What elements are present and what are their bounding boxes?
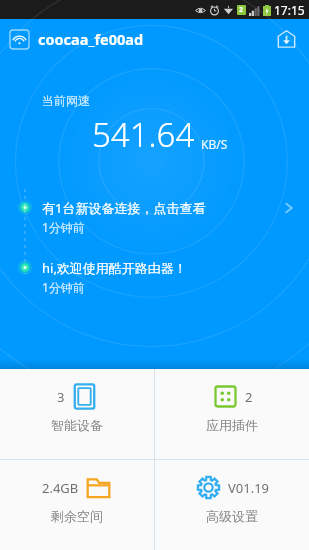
button[interactable]: Plugins bbox=[155, 369, 309, 433]
staticText: 当前网速 bbox=[42, 93, 90, 108]
button[interactable]: Free space bbox=[0, 460, 154, 524]
staticText: 有1台新设备连接，点击查看 bbox=[42, 199, 206, 217]
staticText: 高级设置 bbox=[206, 508, 258, 524]
staticText: 智能设备 bbox=[51, 417, 103, 433]
staticText: KB/S bbox=[201, 136, 228, 152]
staticText: 1分钟前 bbox=[42, 219, 85, 235]
staticText: hi,欢迎使用酷开路由器！ bbox=[42, 259, 187, 277]
button[interactable]: hi,欢迎使用酷开路由器！ bbox=[0, 259, 309, 295]
staticText: V01.19 bbox=[228, 479, 270, 497]
button[interactable]: Download bbox=[273, 26, 299, 52]
staticText: 剩余空间 bbox=[51, 508, 103, 524]
staticText: 2.4GB bbox=[42, 479, 79, 497]
staticText: 3 bbox=[57, 388, 65, 406]
staticText: 17:15 bbox=[274, 2, 305, 18]
staticText: 1分钟前 bbox=[42, 279, 85, 295]
staticText: 应用插件 bbox=[206, 417, 258, 433]
staticText: 2 bbox=[245, 388, 253, 406]
button[interactable]: Wi-Fi bbox=[10, 30, 29, 49]
button[interactable]: Smart devices bbox=[0, 369, 154, 433]
button[interactable]: 有1台新设备连接，点击查看 bbox=[0, 199, 309, 235]
staticText: coocaa_fe00ad bbox=[38, 29, 144, 49]
button[interactable]: Advanced settings bbox=[155, 460, 309, 524]
staticText: 541.64 bbox=[92, 112, 195, 157]
staticText: 2 bbox=[239, 5, 244, 15]
